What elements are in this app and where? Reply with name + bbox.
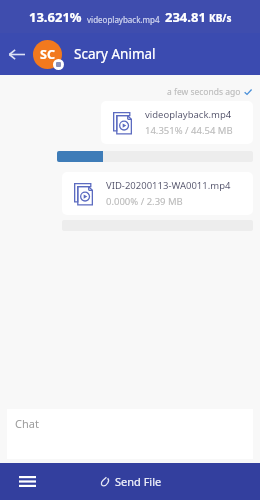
staticText: 234.81 [165,8,206,26]
button[interactable]: Back [0,33,32,75]
staticText: 14.351% / 44.54 MB [145,124,233,137]
staticText: KB/s [209,11,232,25]
button[interactable]: SC [32,39,62,69]
staticText: SC [40,46,55,63]
button[interactable]: videoplayback.mp4 [101,101,253,144]
staticText: Send File [115,474,162,489]
staticText: 13.621% [29,8,82,26]
button[interactable]: Menu [0,463,54,500]
staticText: 0.000% / 2.39 MB [106,195,183,208]
staticText: VID-20200113-WA0011.mp4 [106,179,231,192]
staticText: videoplayback.mp4 [87,14,160,25]
button[interactable]: Chat [7,409,253,459]
staticText: Scary Animal [74,45,156,63]
button[interactable]: Send File [54,463,206,500]
button[interactable]: VID-20200113-WA0011.mp4 [62,172,253,215]
staticText: a few seconds ago [167,86,241,98]
staticText: Chat [15,416,39,431]
staticText: videoplayback.mp4 [145,108,232,121]
